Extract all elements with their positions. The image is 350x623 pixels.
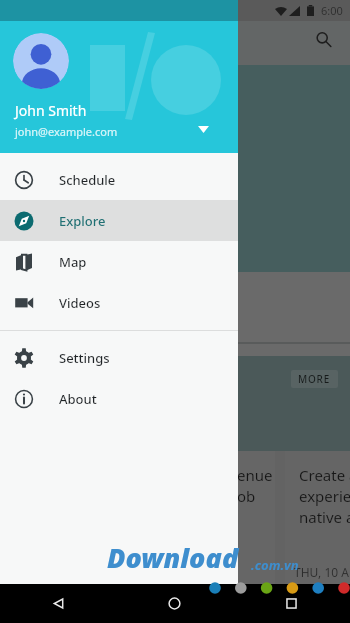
button[interactable]: MORE (291, 370, 338, 388)
staticText: Videos (59, 294, 101, 312)
button[interactable]: About (0, 378, 238, 419)
button[interactable]: Schedule (0, 159, 238, 200)
button[interactable]: Back (0, 584, 116, 623)
staticText: Download (107, 539, 239, 576)
staticText: Create a (299, 465, 350, 485)
staticText: Map (59, 253, 87, 271)
staticText: native ac (299, 507, 350, 527)
staticText: Explore (59, 212, 106, 230)
button[interactable]: enue (0, 451, 275, 584)
button[interactable]: Search (306, 22, 342, 58)
staticText: .com.vn (251, 556, 299, 574)
staticText: ob (237, 486, 256, 506)
staticText: THU, 10 A (294, 564, 349, 580)
button[interactable]: Map (0, 241, 238, 282)
staticText: Schedule (59, 171, 116, 189)
staticText: John Smith (15, 101, 87, 120)
button[interactable]: Videos (0, 282, 238, 323)
button[interactable]: Explore (0, 200, 238, 241)
button[interactable]: Create a (285, 451, 350, 584)
button[interactable]: John Smith (0, 21, 238, 153)
staticText: Settings (59, 349, 110, 367)
staticText: john@example.com (15, 124, 118, 139)
button[interactable]: Home (116, 584, 233, 623)
button[interactable]: Recents (233, 584, 350, 623)
staticText: experien (299, 486, 350, 506)
button[interactable]: Settings (0, 337, 238, 378)
staticText: 6:00 (321, 3, 343, 18)
staticText: MORE (298, 372, 331, 386)
staticText: About (59, 390, 97, 408)
staticText: enue (237, 465, 273, 485)
